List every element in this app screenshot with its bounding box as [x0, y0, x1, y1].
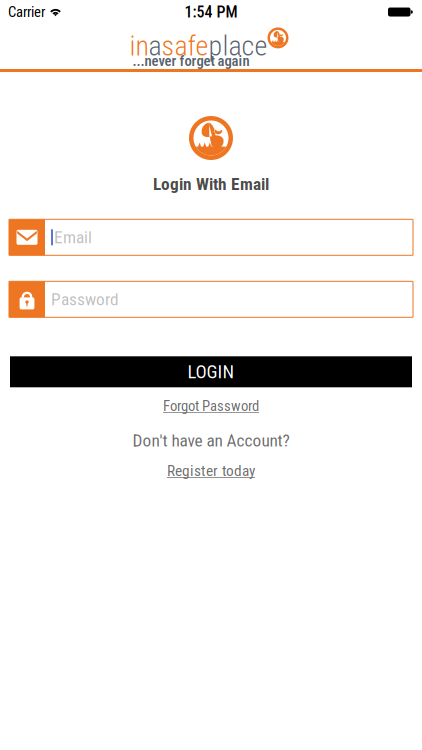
staticText: Don't have an Account?: [132, 430, 289, 451]
staticText: 1:54 PM: [184, 3, 237, 21]
staticText: Carrier: [8, 3, 45, 21]
button[interactable]: Forgot Password: [163, 397, 259, 414]
staticText: LOGIN: [187, 361, 234, 383]
button[interactable]: LOGIN: [10, 356, 412, 387]
staticText: safe: [161, 30, 208, 62]
staticText: Email: [54, 227, 92, 247]
staticText: in: [129, 30, 148, 62]
button[interactable]: Password: [9, 281, 413, 317]
staticText: ...never forget again: [132, 52, 249, 70]
staticText: Login With Email: [153, 174, 269, 194]
staticText: Register today: [167, 462, 255, 480]
button[interactable]: Register today: [167, 462, 255, 480]
staticText: Forgot Password: [163, 397, 259, 414]
staticText: place: [208, 30, 267, 62]
button[interactable]: Email: [9, 219, 413, 255]
staticText: a: [148, 30, 161, 62]
staticText: Password: [51, 289, 119, 309]
